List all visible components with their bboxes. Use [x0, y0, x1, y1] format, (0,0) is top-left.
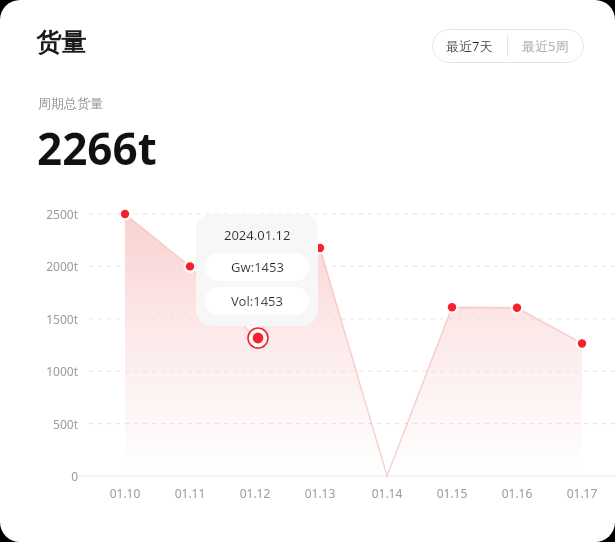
- staticText: 0: [22, 468, 78, 484]
- staticText: Vol:1453: [231, 292, 283, 310]
- staticText: 2500t: [22, 206, 78, 222]
- staticText: 最近7天: [446, 37, 493, 55]
- staticText: 货量: [36, 27, 86, 58]
- staticText: 01.11: [162, 485, 218, 501]
- button[interactable]: 最近5周: [508, 30, 583, 62]
- staticText: 2000t: [22, 258, 78, 274]
- button[interactable]: Data point details for 2024.01.12: [196, 214, 318, 326]
- button[interactable]: 最近7天: [432, 30, 507, 62]
- staticText: 01.13: [292, 485, 348, 501]
- staticText: 01.16: [489, 485, 545, 501]
- staticText: 2024.01.12: [224, 226, 291, 244]
- staticText: 1000t: [22, 363, 78, 379]
- staticText: 01.15: [424, 485, 480, 501]
- staticText: 01.17: [554, 485, 610, 501]
- staticText: 500t: [22, 416, 78, 432]
- staticText: Gw:1453: [231, 258, 284, 276]
- staticText: 01.14: [359, 485, 415, 501]
- staticText: 周期总货量: [38, 95, 103, 111]
- staticText: 01.12: [227, 485, 283, 501]
- staticText: 2266t: [37, 118, 157, 178]
- staticText: 01.10: [97, 485, 153, 501]
- staticText: 1500t: [22, 311, 78, 327]
- staticText: 最近5周: [522, 37, 569, 55]
